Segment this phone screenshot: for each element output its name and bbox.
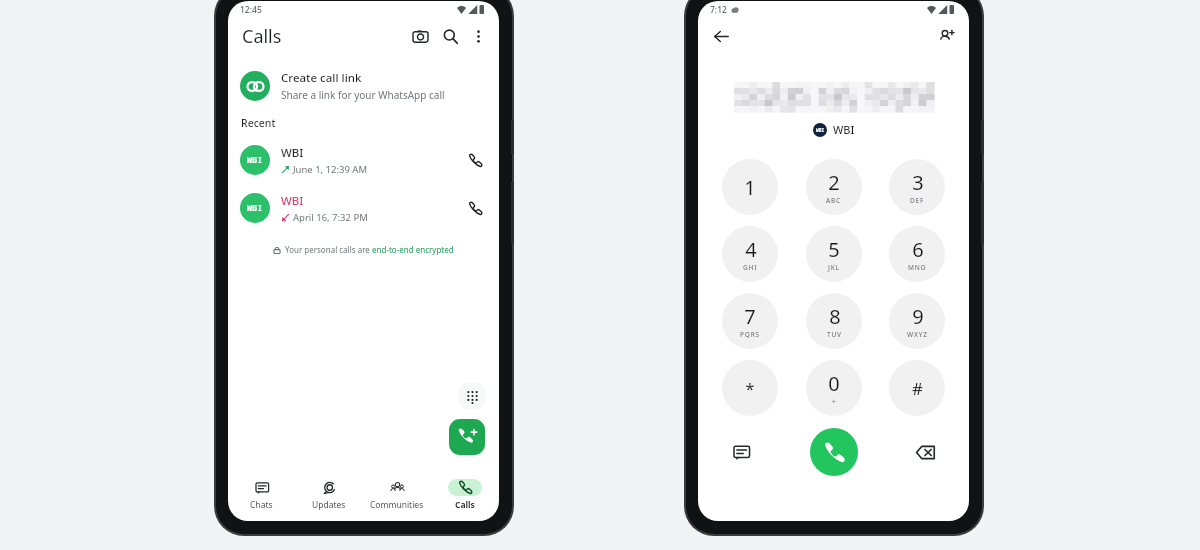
staticText: Calls [455, 499, 475, 511]
staticText: 4 [745, 236, 757, 263]
staticText: + [832, 397, 837, 406]
staticText: June 1, 12:39 AM [293, 163, 368, 176]
button[interactable]: 4 [722, 226, 778, 282]
button[interactable]: Back [708, 23, 734, 49]
button[interactable]: Chats [228, 475, 295, 515]
staticText: MNO [908, 263, 927, 272]
staticText: Share a link for your WhatsApp call [281, 88, 445, 102]
staticText: 7:12 [710, 4, 727, 16]
staticText: 1 [744, 174, 756, 201]
staticText: 6 [912, 236, 924, 263]
staticText: 8 [829, 303, 841, 330]
staticText: Your personal calls are [285, 244, 372, 255]
staticText: Updates [312, 499, 346, 511]
button[interactable]: Backspace [905, 432, 945, 472]
button[interactable]: Call back [463, 196, 487, 220]
button[interactable]: Call back [463, 148, 487, 172]
staticText: 9 [912, 303, 924, 330]
staticText: WBI [247, 202, 263, 214]
staticText: GHI [743, 263, 758, 272]
staticText: WBI [281, 193, 304, 209]
staticText: 3 [912, 169, 924, 196]
staticText: 12:45 [240, 4, 262, 16]
button[interactable]: WBI [228, 136, 499, 184]
staticText: 0 [828, 370, 840, 397]
button[interactable]: Call [810, 428, 858, 476]
staticText: * [745, 377, 755, 400]
staticText: April 16, 7:32 PM [293, 211, 368, 224]
button[interactable]: 2 [806, 159, 862, 215]
button[interactable]: Add contact [933, 23, 959, 49]
staticText: 2 [828, 169, 840, 196]
staticText: ABC [826, 196, 842, 205]
staticText: end-to-end encrypted [372, 244, 454, 255]
button[interactable]: More options [465, 23, 491, 49]
staticText: 7 [744, 303, 756, 330]
staticText: Recent [241, 116, 276, 130]
staticText: WXYZ [907, 330, 928, 339]
staticText: Create call link [281, 70, 362, 86]
staticText: PQRS [740, 330, 760, 339]
button[interactable]: 7 [722, 293, 778, 349]
staticText: 5 [828, 236, 840, 263]
button[interactable]: Create call link [228, 64, 499, 108]
button[interactable]: 8 [806, 293, 862, 349]
staticText: WBI [281, 145, 304, 161]
staticText: WBI [816, 127, 825, 133]
button[interactable]: 3 [889, 159, 945, 215]
button[interactable]: WBI [228, 184, 499, 232]
button[interactable]: Message [722, 432, 762, 472]
button[interactable]: Search [437, 23, 463, 49]
staticText: TUV [827, 330, 842, 339]
staticText: # [912, 377, 923, 400]
button[interactable]: Camera [407, 23, 433, 49]
button[interactable]: 5 [806, 226, 862, 282]
staticText: WBI [833, 122, 855, 137]
staticText: Chats [250, 499, 273, 511]
button[interactable]: 0 [806, 360, 862, 416]
button[interactable]: * [722, 360, 778, 416]
button[interactable]: Communities [363, 475, 431, 515]
button[interactable]: 1 [722, 159, 778, 215]
button[interactable]: Updates [295, 475, 363, 515]
staticText: Communities [370, 499, 424, 511]
button[interactable]: 9 [889, 293, 945, 349]
staticText: DEF [910, 196, 925, 205]
button[interactable]: 6 [889, 226, 945, 282]
button[interactable]: Dialpad [459, 383, 485, 409]
button[interactable]: New call [449, 419, 485, 455]
staticText: Calls [242, 24, 282, 49]
button[interactable]: # [889, 360, 945, 416]
staticText: WBI [247, 154, 263, 166]
staticText: JKL [828, 263, 840, 272]
button[interactable]: Calls [431, 475, 499, 515]
